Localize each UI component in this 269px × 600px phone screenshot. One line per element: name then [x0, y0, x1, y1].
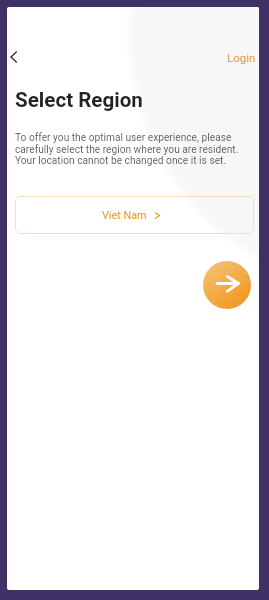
staticText: Login	[227, 51, 256, 64]
button[interactable]: Viet Nam	[15, 196, 254, 234]
staticText: Viet Nam	[102, 209, 147, 222]
button[interactable]: Back	[7, 45, 24, 69]
button[interactable]: Next	[203, 261, 251, 309]
staticText: Select Region	[15, 88, 143, 112]
button[interactable]: Login	[217, 45, 259, 70]
staticText: To offer you the optimal user experience…	[15, 132, 251, 166]
